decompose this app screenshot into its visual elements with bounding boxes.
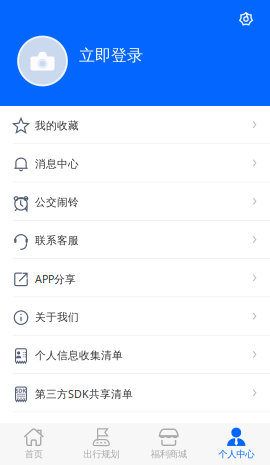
staticText: 公交闹铃 [35, 196, 79, 209]
button[interactable]: SDK [0, 374, 270, 412]
button[interactable]: 公交运营服务 [0, 412, 270, 451]
button[interactable]: 福利商城 [135, 422, 202, 465]
button[interactable]: APP分享 [0, 259, 270, 297]
staticText: APP分享 [35, 272, 76, 286]
button[interactable]: 我的收藏 [0, 106, 270, 144]
staticText: 我的收藏 [35, 119, 79, 132]
button[interactable]: Settings [234, 7, 258, 31]
staticText: 联系客服 [35, 234, 79, 247]
staticText: 立即登录 [79, 46, 143, 65]
staticText: 福利商城 [151, 448, 187, 460]
button[interactable]: 关于我们 [0, 297, 270, 336]
staticText: 消息中心 [35, 157, 79, 170]
button[interactable]: 首页 [0, 422, 67, 465]
button[interactable]: 出行规划 [67, 422, 135, 465]
staticText: 第三方SDK共享清单 [35, 387, 133, 401]
button[interactable]: 个人信息收集清单 [0, 336, 270, 374]
staticText: 首页 [25, 448, 43, 460]
staticText: 公交运营服务 [35, 425, 101, 439]
button[interactable]: 联系客服 [0, 221, 270, 259]
button[interactable]: 个人中心 [202, 422, 270, 465]
button[interactable]: 公交闹铃 [0, 183, 270, 221]
staticText: 个人中心 [218, 448, 254, 460]
staticText: 个人信息收集清单 [35, 349, 123, 362]
staticText: 关于我们 [35, 311, 79, 324]
staticText: 出行规划 [83, 448, 119, 460]
staticText: SDK [15, 387, 26, 394]
button[interactable]: 消息中心 [0, 144, 270, 183]
